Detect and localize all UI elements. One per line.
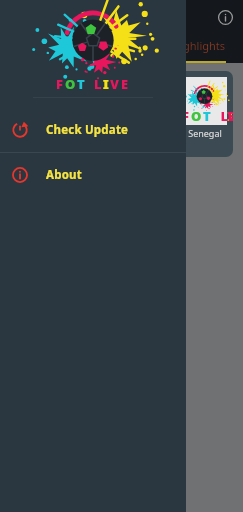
staticText: V (110, 75, 121, 93)
button[interactable]: F (176, 71, 233, 157)
button[interactable]: Highlights (186, 38, 240, 53)
staticText: L (220, 107, 227, 125)
staticText: O (65, 75, 77, 93)
button[interactable]: Check Update (0, 108, 186, 152)
staticText: O (191, 107, 203, 125)
button[interactable]: Info (215, 7, 235, 27)
staticText: F (56, 75, 65, 93)
staticText: Highlights (172, 38, 226, 53)
staticText: L (94, 75, 103, 93)
staticText: I (103, 75, 110, 93)
button[interactable]: About (0, 153, 186, 197)
staticText: F (182, 107, 191, 125)
staticText: About (46, 167, 82, 183)
staticText: Check Update (46, 122, 129, 138)
staticText: T (77, 75, 86, 93)
staticText: Senegal (188, 127, 222, 139)
staticText: E (121, 75, 130, 93)
staticText: T (203, 107, 212, 125)
